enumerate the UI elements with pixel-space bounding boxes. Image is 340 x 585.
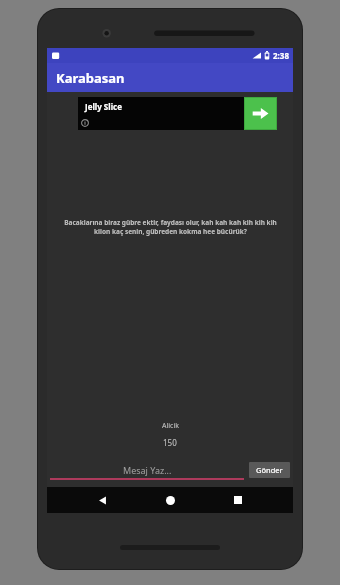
button[interactable]: Recent apps	[225, 487, 251, 513]
staticText: Alicik	[162, 421, 179, 431]
button[interactable]: Gönder	[249, 462, 290, 478]
button[interactable]: Jelly Slice	[78, 97, 277, 130]
staticText: Karabasan	[56, 69, 125, 87]
staticText: 2:38	[273, 50, 289, 61]
staticText: Jelly Slice	[85, 101, 122, 112]
staticText: 150	[163, 437, 177, 448]
button[interactable]: Back	[89, 487, 115, 513]
button[interactable]: Mesaj Yaz...	[50, 462, 244, 480]
other: Info	[81, 119, 89, 127]
staticText: Gönder	[256, 465, 283, 475]
staticText: kilon kaç senin, gübreden kokma hee bücü…	[94, 227, 247, 236]
button[interactable]: Send arrow	[245, 98, 276, 129]
staticText: Bacaklarına biraz gübre ektir, faydası o…	[64, 218, 277, 227]
staticText: Mesaj Yaz...	[123, 464, 172, 476]
button[interactable]: Home	[157, 487, 183, 513]
